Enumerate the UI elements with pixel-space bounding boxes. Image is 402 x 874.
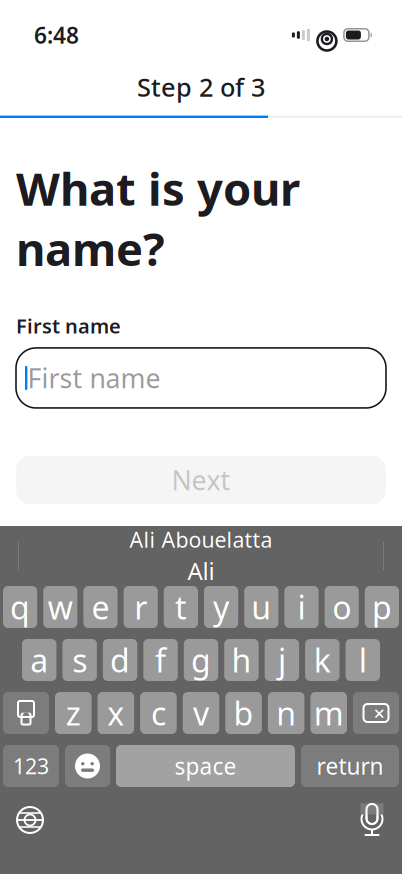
staticText: v [193, 692, 209, 734]
staticText: s [72, 639, 87, 681]
button[interactable]: m [310, 692, 347, 734]
staticText: Ali Abouelatta [129, 525, 272, 554]
staticText: o [332, 586, 351, 628]
staticText: r [134, 586, 147, 628]
staticText: return [316, 751, 383, 781]
button[interactable]: z [55, 692, 92, 734]
button[interactable]: Dictation [350, 798, 394, 842]
button[interactable]: n [268, 692, 304, 734]
button[interactable]: Delete [353, 692, 399, 734]
staticText: a [30, 639, 48, 681]
button[interactable]: k [305, 639, 339, 681]
button[interactable]: Next [16, 456, 386, 504]
button[interactable]: b [225, 692, 262, 734]
staticText: Next [171, 462, 230, 498]
button[interactable]: r [124, 586, 158, 628]
button[interactable]: space [116, 745, 295, 787]
button[interactable]: j [265, 639, 299, 681]
button[interactable]: p [365, 586, 399, 628]
staticText: h [231, 639, 251, 681]
button[interactable]: Emoji keyboard [65, 745, 110, 787]
staticText: t [175, 586, 187, 628]
staticText: First name [27, 360, 160, 396]
button[interactable]: o [325, 586, 359, 628]
button[interactable]: h [224, 639, 259, 681]
staticText: 6:48 [34, 20, 79, 50]
button[interactable]: a [22, 639, 56, 681]
staticText: z [66, 692, 81, 734]
button[interactable]: 123 [3, 745, 59, 787]
staticText: × [373, 700, 384, 726]
button[interactable]: Ali Abouelatta [99, 530, 302, 582]
staticText: First name [16, 312, 121, 339]
staticText: j [278, 639, 286, 681]
staticText: Step 2 of 3 [137, 70, 265, 104]
button[interactable]: i [284, 586, 319, 628]
staticText: g [191, 639, 211, 681]
button[interactable]: y [204, 586, 238, 628]
button[interactable]: q [3, 586, 37, 628]
staticText: c [151, 692, 166, 734]
button[interactable]: u [244, 586, 278, 628]
staticText: e [91, 586, 109, 628]
staticText: f [155, 639, 166, 681]
staticText: k [314, 639, 331, 681]
staticText: p [372, 586, 392, 628]
staticText: l [359, 639, 367, 681]
button[interactable]: Next keyboard [8, 798, 52, 842]
button[interactable]: d [103, 639, 137, 681]
staticText: space [174, 751, 236, 781]
button[interactable]: c [140, 692, 177, 734]
staticText: n [276, 692, 296, 734]
button[interactable]: v [183, 692, 219, 734]
button[interactable]: s [62, 639, 97, 681]
button[interactable]: return [301, 745, 399, 787]
staticText: y [213, 586, 229, 628]
button[interactable]: First name [16, 348, 386, 408]
staticText: i [297, 586, 305, 628]
button[interactable]: x [98, 692, 134, 734]
button[interactable]: f [143, 639, 178, 681]
staticText: m [314, 692, 344, 734]
button[interactable]: w [43, 586, 77, 628]
staticText: 123 [13, 752, 49, 780]
staticText: Ali [187, 555, 214, 587]
staticText: u [251, 586, 271, 628]
button[interactable]: t [164, 586, 198, 628]
staticText: d [110, 639, 130, 681]
staticText: What is your name? [16, 158, 300, 278]
button[interactable]: l [346, 639, 380, 681]
button[interactable]: Shift [3, 692, 49, 734]
staticText: x [107, 692, 124, 734]
staticText: w [48, 586, 73, 628]
staticText: q [10, 586, 30, 628]
staticText: b [234, 692, 254, 734]
button[interactable]: g [184, 639, 218, 681]
button[interactable]: e [83, 586, 118, 628]
